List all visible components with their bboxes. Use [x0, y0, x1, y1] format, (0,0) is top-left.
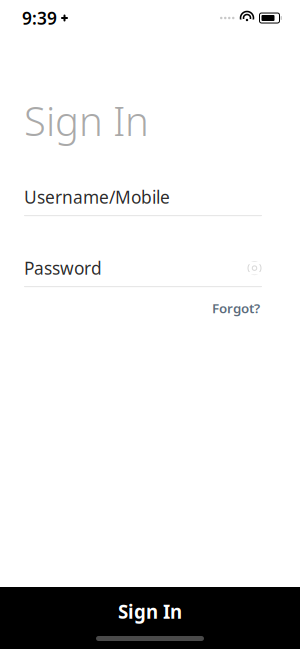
button[interactable]: Password: [24, 259, 262, 287]
staticText: Password: [24, 257, 102, 280]
button[interactable]: Forgot?: [210, 296, 262, 320]
staticText: Sign In: [118, 599, 182, 624]
staticText: Forgot?: [212, 299, 260, 317]
button[interactable]: Username/Mobile: [24, 188, 262, 216]
staticText: Username/Mobile: [24, 186, 170, 209]
staticText: Sign In: [24, 94, 149, 147]
staticText: 9:39: [22, 6, 57, 29]
button[interactable]: Sign In: [0, 587, 300, 649]
